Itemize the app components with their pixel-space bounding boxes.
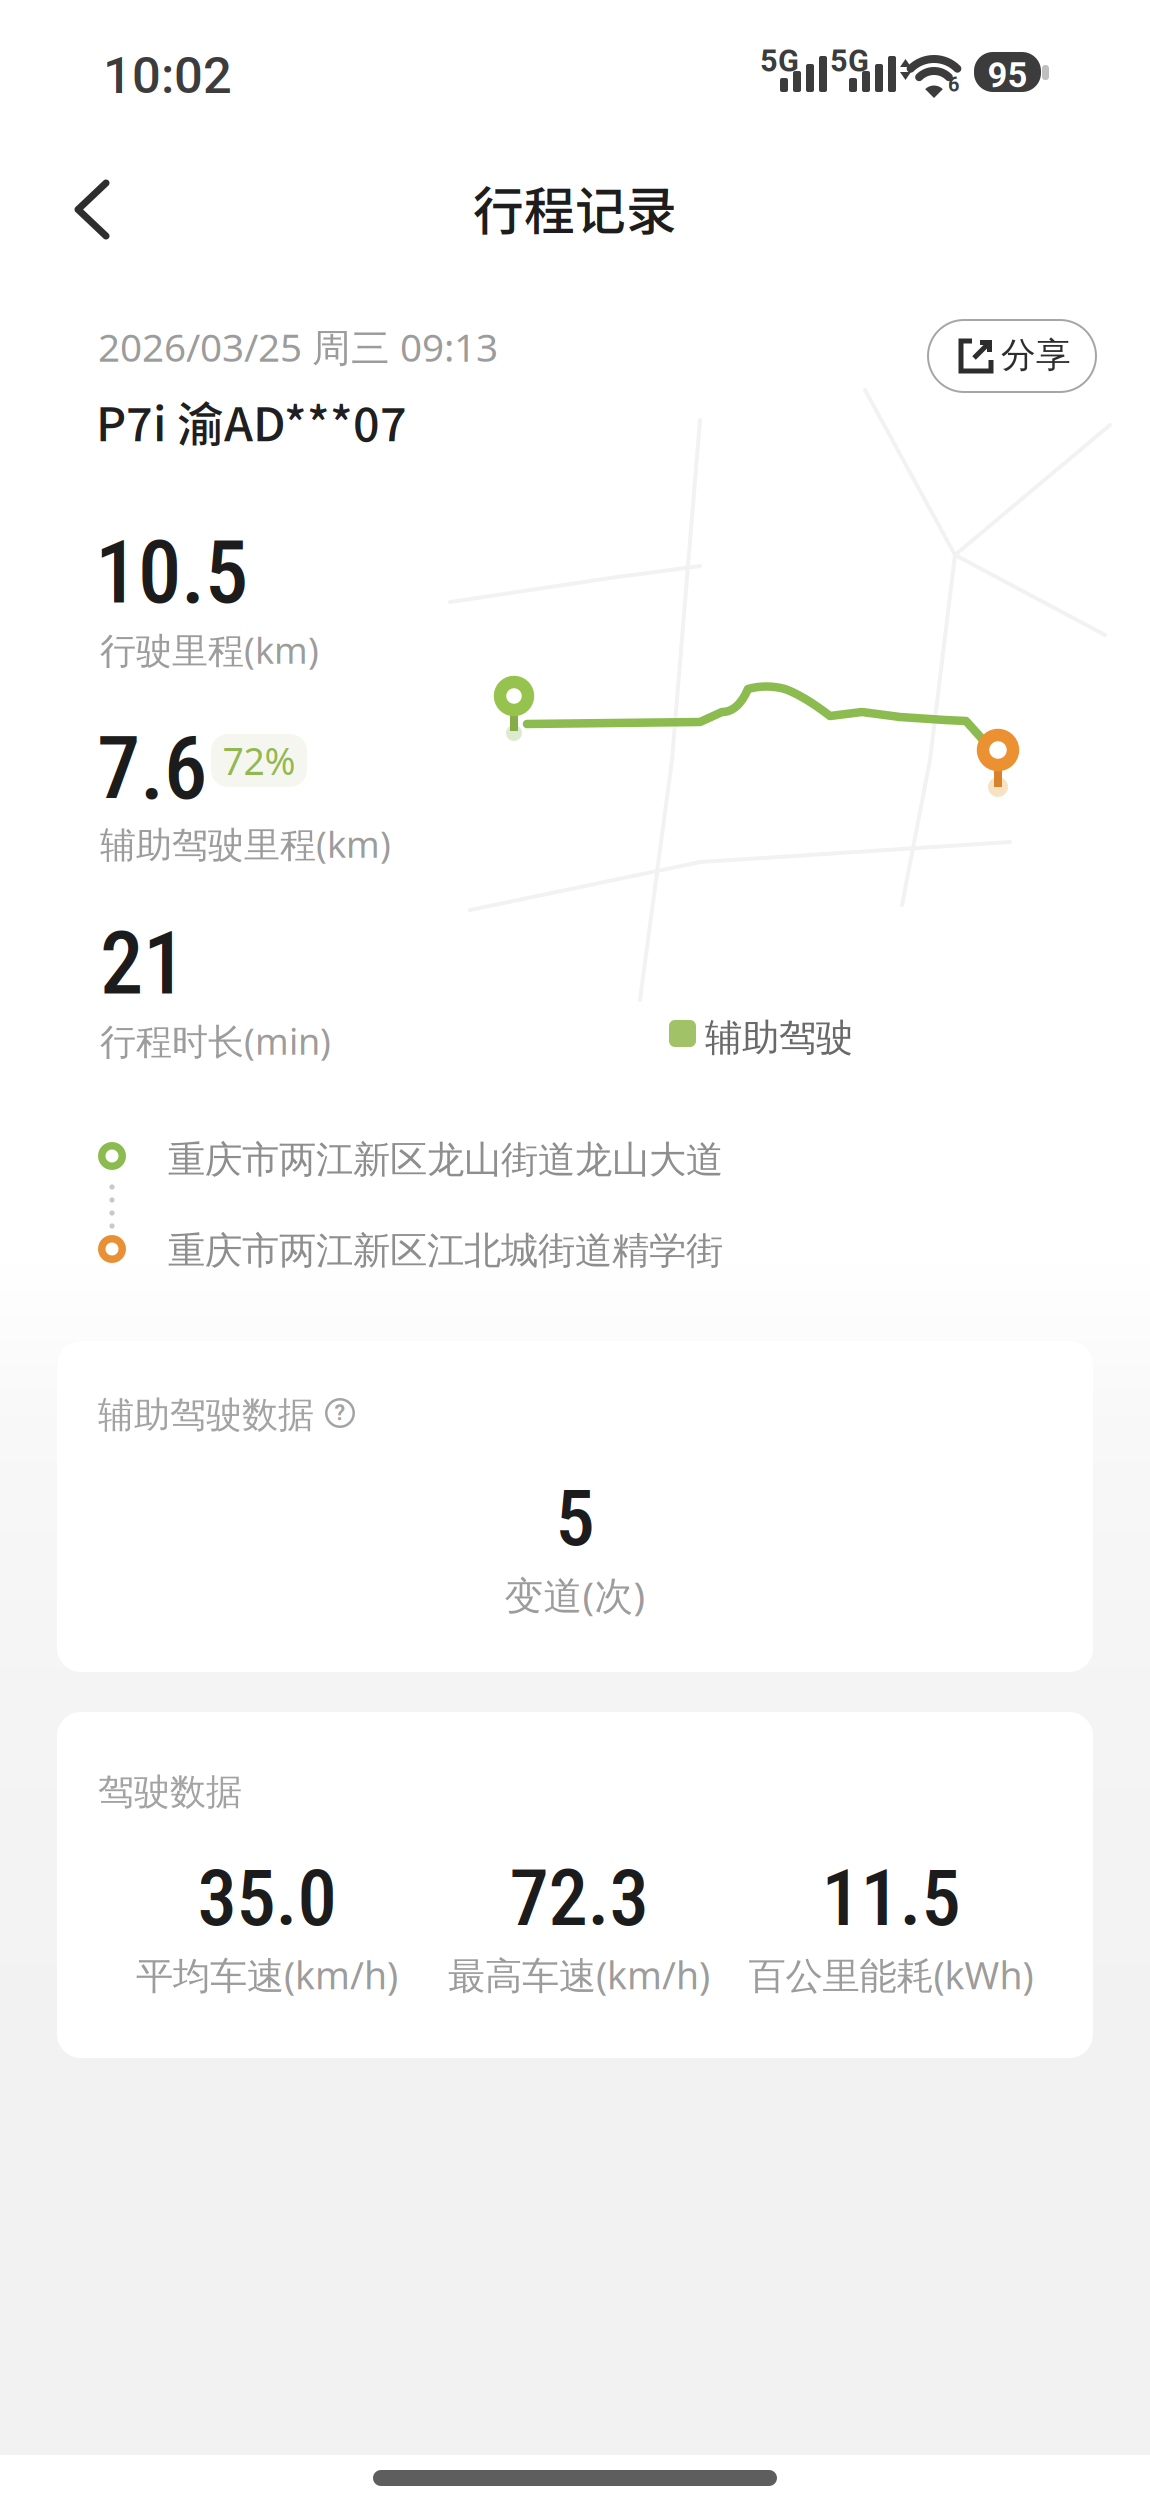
staticText: 10.5 [95,522,248,624]
staticText: 2026/03/25 周三 09:13 [98,321,498,372]
staticText: 辅助驾驶里程(km) [100,820,391,868]
staticText: 35.0 [197,1852,336,1944]
staticText: 行程时长(min) [100,1017,331,1065]
button[interactable]: 分享 [927,319,1097,393]
staticText: 驾驶数据 [98,1770,242,1814]
staticText: 11.5 [821,1852,960,1944]
staticText: P7i 渝AD***07 [96,387,407,455]
staticText: 5G [760,43,799,79]
staticText: 平均车速(km/h) [136,1950,398,2000]
staticText: 6 [948,73,959,96]
staticText: 行程记录 [473,171,677,244]
staticText: 5 [555,1472,594,1564]
staticText: 95 [987,55,1027,96]
staticText: 分享 [1001,334,1071,377]
staticText: 行驶里程(km) [100,626,319,674]
staticText: ? [334,1400,345,1425]
staticText: 5G [830,43,869,79]
staticText: 21 [100,913,186,1015]
button[interactable]: Back [52,168,132,252]
staticText: 最高车速(km/h) [448,1950,710,2000]
staticText: 重庆市两江新区江北城街道精学街 [168,1228,723,1274]
staticText: 10:02 [103,46,232,105]
staticText: 辅助驾驶 [705,1015,853,1061]
staticText: 变道(次) [504,1569,645,1620]
staticText: 72.3 [509,1852,648,1944]
staticText: 72% [222,736,295,785]
staticText: 重庆市两江新区龙山街道龙山大道 [168,1137,723,1183]
staticText: 辅助驾驶数据 [98,1393,314,1437]
staticText: 7.6 [97,718,207,820]
button[interactable]: 辅助驾驶数据说明 [325,1398,355,1428]
staticText: 百公里能耗(kWh) [748,1950,1033,2000]
